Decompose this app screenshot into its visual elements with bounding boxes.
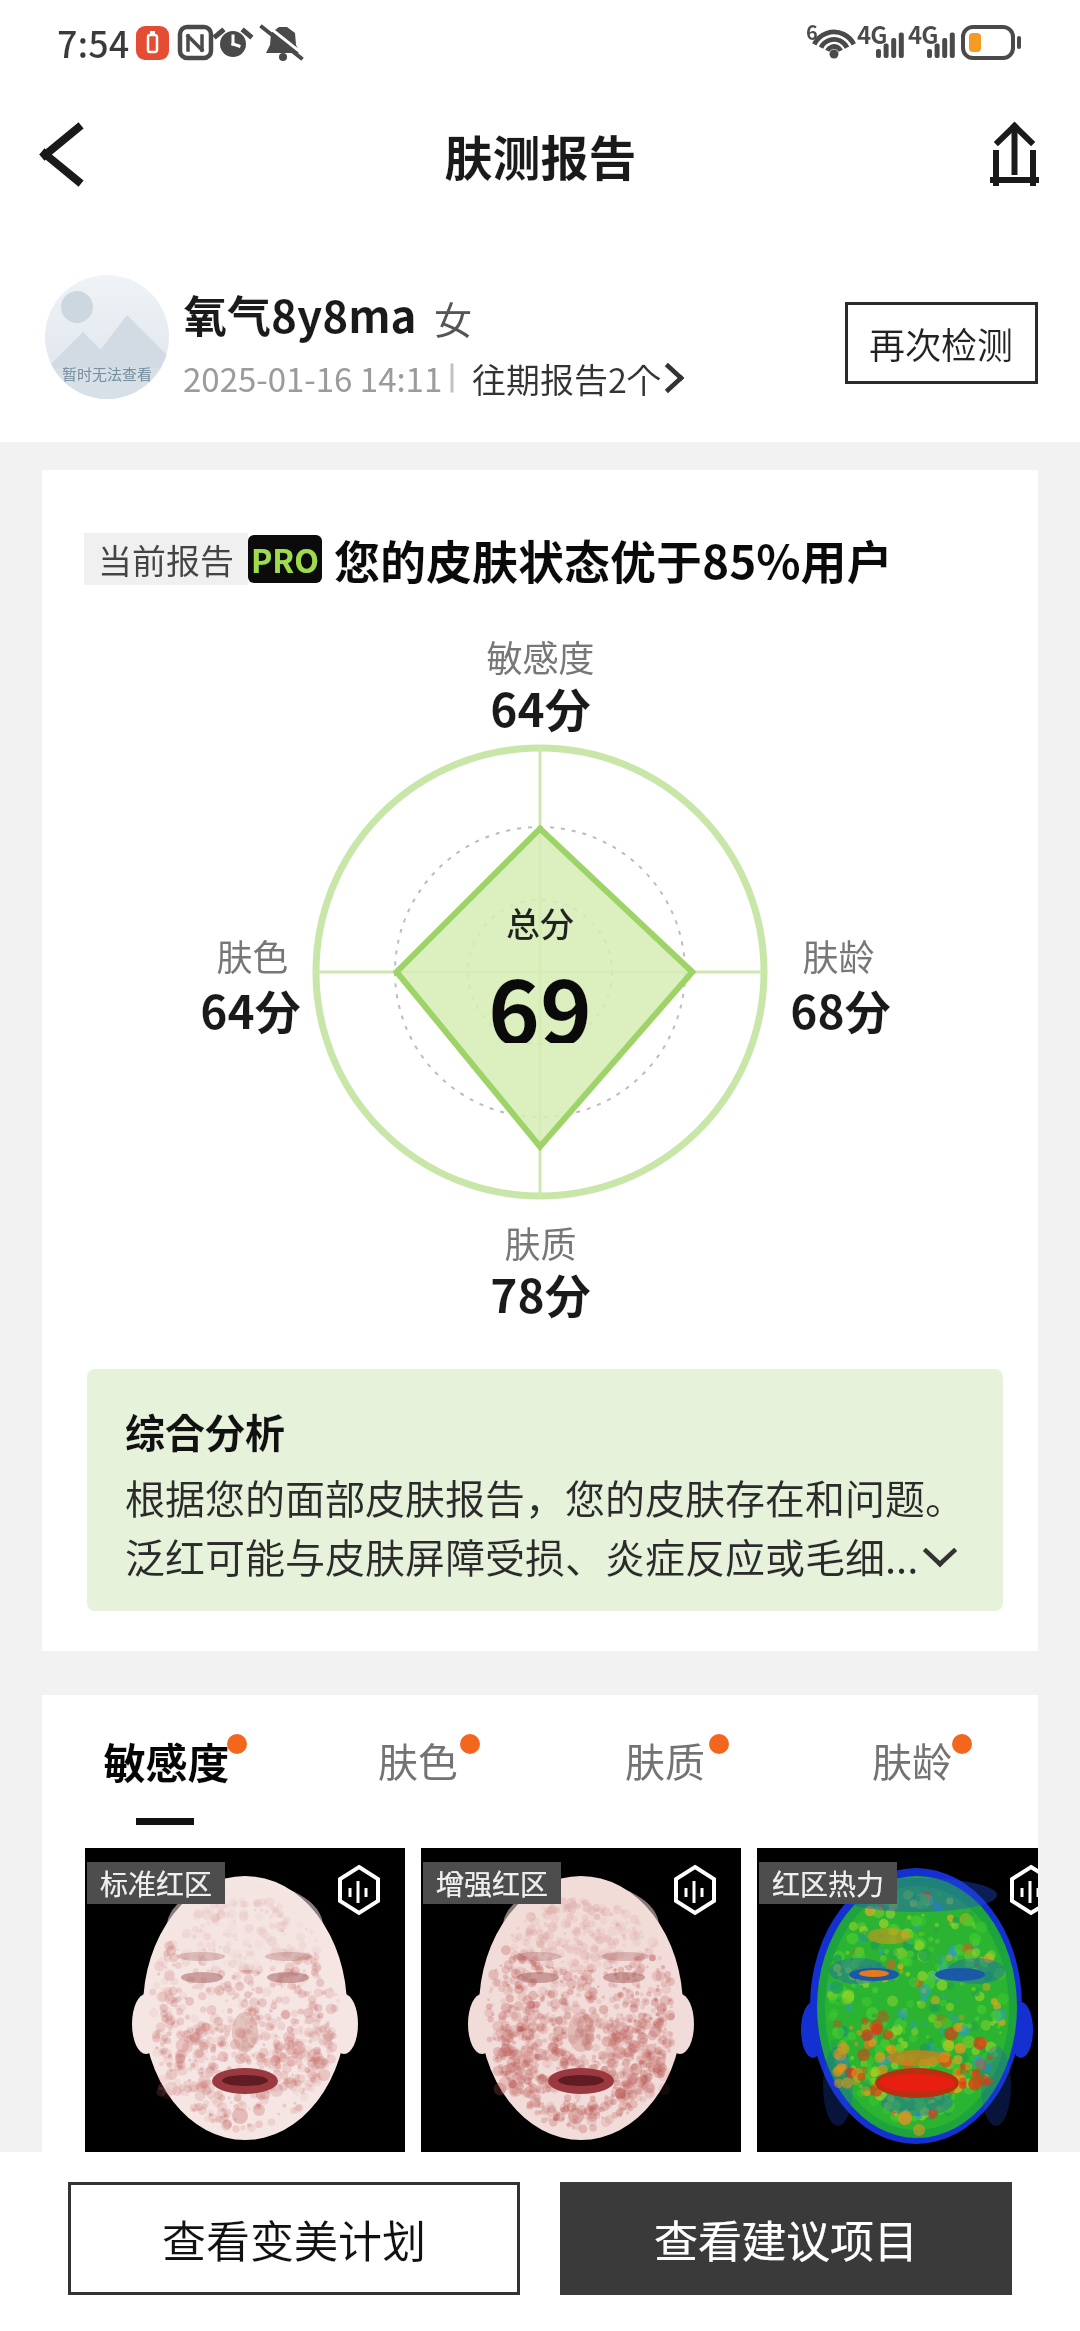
button[interactable]: 肤质 [465, 1710, 865, 1810]
staticText: 当前报告 [98, 535, 234, 584]
staticText: 根据您的面部皮肤报告，您的皮肤存在和问题。 [125, 1468, 965, 1526]
button[interactable] [20, 120, 100, 200]
button[interactable]: 查看变美计划 [68, 2182, 520, 2295]
staticText: PRO [251, 536, 319, 582]
staticText: 女 [434, 290, 473, 345]
staticText: 2025-01-16 14:11 [183, 354, 443, 402]
button[interactable]: 查看建议项目 [560, 2182, 1012, 2295]
staticText: 标准红区 [100, 1863, 213, 1904]
staticText: 肤测报告 [444, 120, 637, 190]
staticText: 总分 [506, 898, 574, 947]
staticText: 68分 [790, 976, 891, 1043]
staticText: 增强红区 [436, 1863, 549, 1904]
staticText: 您的皮肤状态优于85%用户 [334, 526, 893, 593]
staticText: 肤色 [378, 1731, 458, 1789]
staticText: 红区热力 [772, 1863, 885, 1904]
button[interactable] [470, 352, 685, 400]
staticText: 6 [806, 17, 818, 46]
staticText: 肤龄 [802, 929, 875, 981]
staticText: 泛红可能与皮肤屏障受损、炎症反应或毛细... [125, 1527, 919, 1585]
staticText: 肤质 [504, 1216, 577, 1268]
staticText: 肤色 [216, 929, 289, 981]
staticText: 查看变美计划 [162, 2207, 426, 2271]
button[interactable]: 肤色 [218, 1710, 618, 1810]
staticText: 78分 [490, 1260, 591, 1327]
staticText: 查看建议项目 [654, 2207, 918, 2271]
button[interactable] [421, 1848, 741, 2152]
staticText: 4G [908, 16, 938, 51]
button[interactable]: 敏感度 [0, 1710, 366, 1810]
staticText: 64分 [490, 674, 591, 741]
staticText: 敏感度 [486, 630, 595, 682]
staticText: 暂时无法查看 [62, 363, 153, 385]
staticText: 再次检测 [869, 317, 1014, 369]
button[interactable] [757, 1848, 1038, 2152]
staticText: 敏感度 [103, 1730, 230, 1791]
staticText: 氧气8y8ma [183, 282, 417, 346]
button[interactable] [85, 1848, 405, 2152]
button[interactable]: 肤龄 [712, 1710, 1080, 1810]
staticText: 4G [857, 16, 887, 51]
staticText: 综合分析 [125, 1402, 285, 1460]
staticText: 往期报告2个 [472, 354, 661, 403]
staticText: 肤龄 [872, 1731, 952, 1789]
staticText: 64分 [200, 976, 301, 1043]
staticText: 69 [488, 943, 592, 1043]
staticText: 7:54 [57, 16, 130, 68]
staticText: 肤质 [625, 1731, 705, 1789]
button[interactable]: 再次检测 [845, 302, 1038, 384]
button[interactable] [985, 115, 1053, 195]
